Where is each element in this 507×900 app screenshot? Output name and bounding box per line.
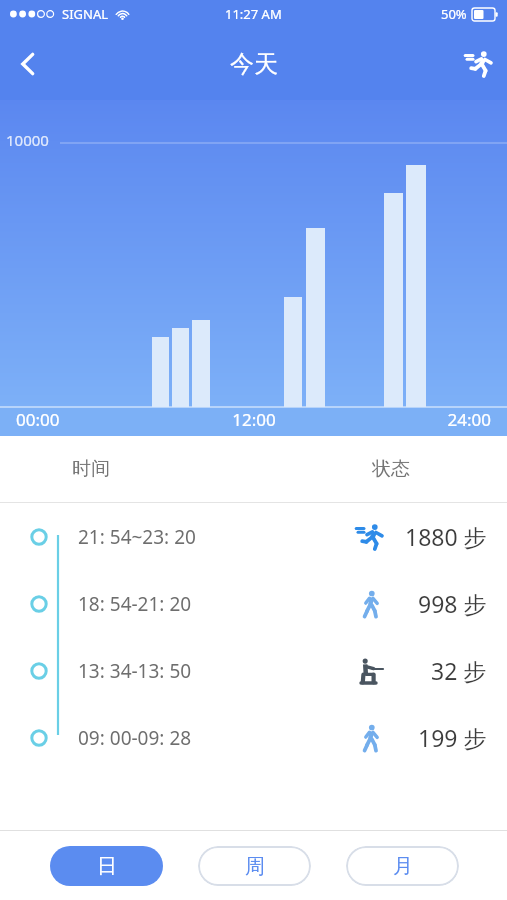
staticText: 998 步 (418, 588, 487, 619)
button[interactable]: 周 (198, 846, 311, 886)
staticText: 32 步 (431, 655, 487, 686)
staticText: 状态 (372, 457, 410, 481)
staticText: 时间 (72, 457, 110, 481)
staticText: 21: 54~23: 20 (78, 524, 196, 550)
staticText: 50% (441, 5, 467, 23)
button[interactable]: Back (0, 36, 56, 92)
staticText: 月 (393, 854, 413, 879)
button[interactable]: 月 (346, 846, 459, 886)
staticText: 12:00 (175, 408, 333, 431)
staticText: 00:00 (16, 408, 175, 431)
staticText: 18: 54-21: 20 (78, 591, 192, 617)
staticText: SIGNAL (62, 5, 109, 23)
staticText: 周 (245, 854, 265, 879)
button[interactable]: 18: 54-21: 20 (0, 570, 507, 637)
button[interactable]: 09: 00-09: 28 (0, 704, 507, 771)
staticText: 09: 00-09: 28 (78, 725, 192, 751)
button[interactable]: 21: 54~23: 20 (0, 503, 507, 570)
staticText: 今天 (230, 49, 278, 79)
staticText: 199 步 (418, 722, 487, 753)
staticText: 1880 步 (405, 521, 487, 552)
staticText: 11:27 AM (225, 5, 282, 23)
staticText: 10000 (6, 130, 49, 150)
button[interactable]: 日 (50, 846, 163, 886)
staticText: 13: 34-13: 50 (78, 658, 192, 684)
button[interactable]: 13: 34-13: 50 (0, 637, 507, 704)
button[interactable]: Activity (451, 36, 507, 92)
staticText: 24:00 (333, 408, 491, 431)
staticText: 日 (97, 854, 117, 879)
